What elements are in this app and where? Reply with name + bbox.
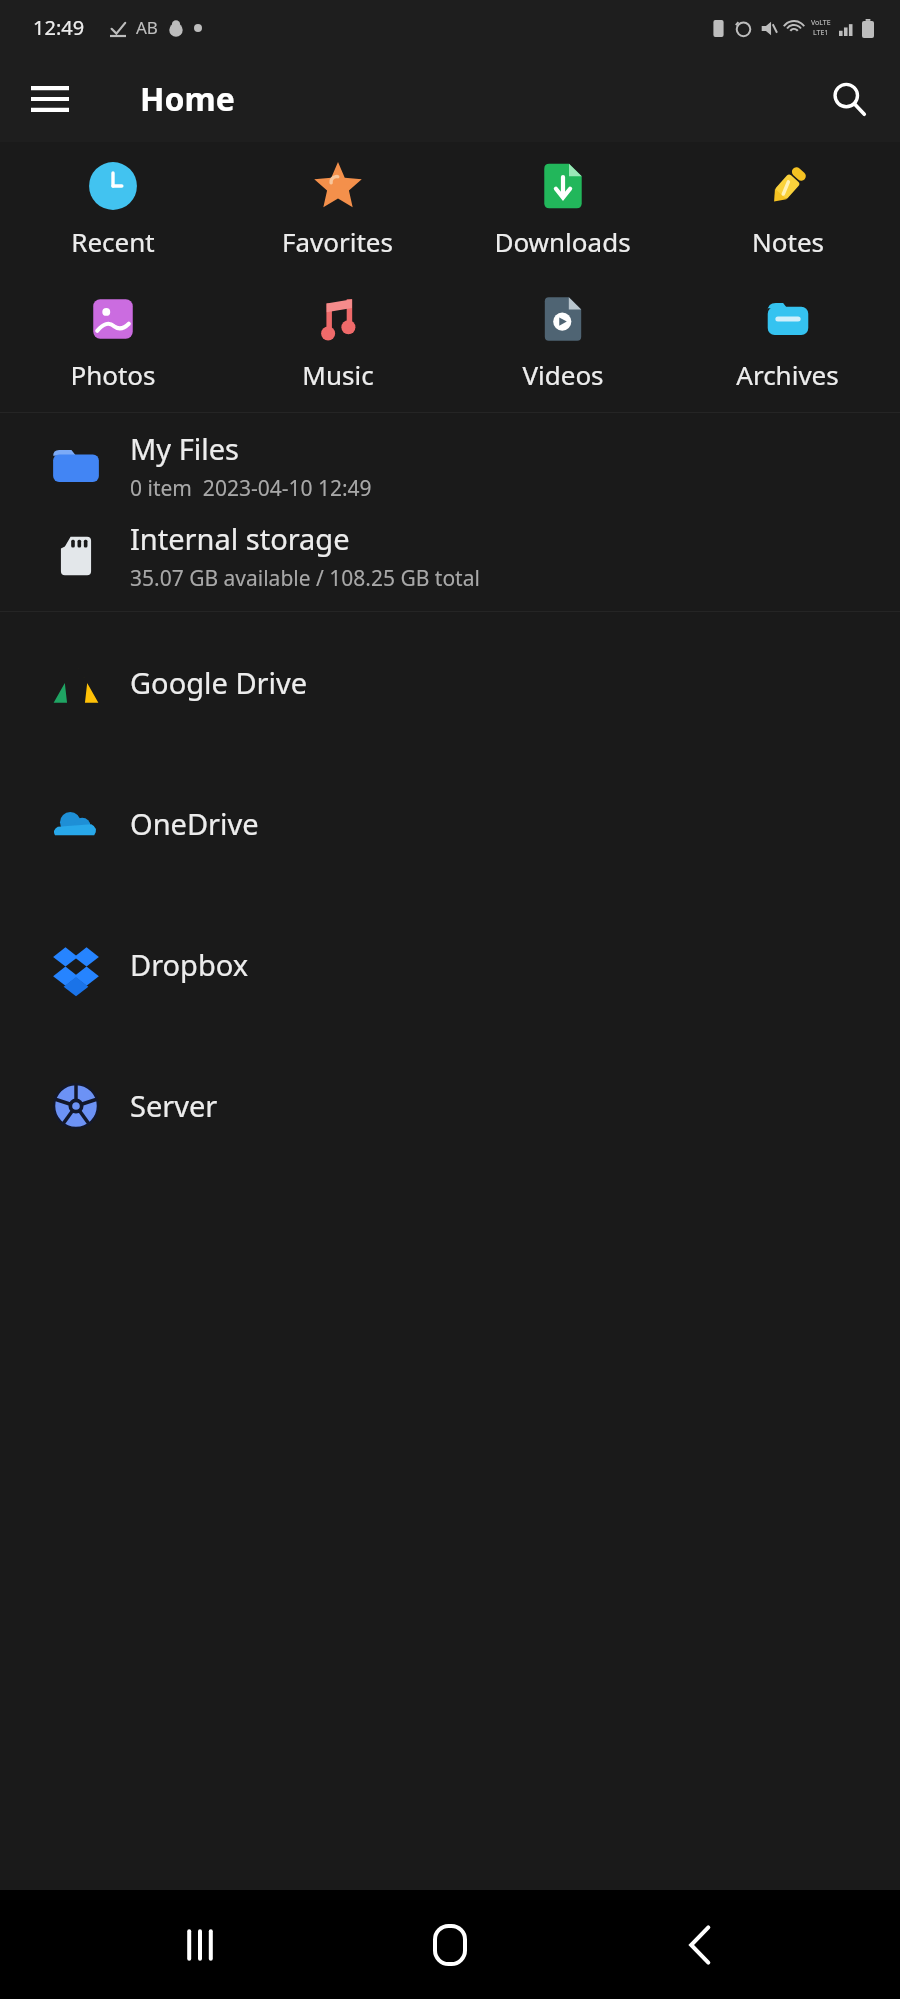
staticText: VoLTE (811, 18, 831, 28)
button[interactable]: Internal storage (0, 511, 900, 601)
button[interactable]: Search (818, 68, 880, 130)
staticText: Notes (752, 224, 824, 259)
button[interactable]: Music (225, 289, 450, 396)
staticText: Archives (736, 357, 839, 392)
staticText: 12:49 (33, 14, 85, 41)
staticText: Music (302, 357, 374, 392)
button[interactable]: Server (0, 1035, 900, 1176)
button[interactable]: Archives (675, 289, 900, 396)
button[interactable]: Videos (450, 289, 675, 396)
staticText: LTE1 (813, 28, 829, 38)
staticText: Server (130, 1086, 218, 1125)
staticText: Dropbox (130, 945, 249, 984)
staticText: Recent (71, 224, 155, 259)
button[interactable]: Dropbox (0, 894, 900, 1035)
staticText: 0 item 2023-04-10 12:49 (130, 474, 372, 503)
staticText: AB (136, 16, 158, 39)
button[interactable]: Favorites (225, 156, 450, 263)
staticText: Favorites (282, 224, 393, 259)
button[interactable]: Back (650, 1895, 750, 1995)
button[interactable]: Photos (0, 289, 225, 396)
staticText: Google Drive (130, 663, 308, 702)
button[interactable]: Downloads (450, 156, 675, 263)
button[interactable]: Menu (20, 69, 80, 129)
staticText: Internal storage (130, 519, 350, 558)
staticText: My Files (130, 429, 239, 468)
staticText: 35.07 GB available / 108.25 GB total (130, 564, 480, 593)
staticText: Home (140, 77, 235, 121)
staticText: OneDrive (130, 804, 259, 843)
button[interactable]: Home (400, 1895, 500, 1995)
button[interactable]: Recent (0, 156, 225, 263)
staticText: Downloads (494, 224, 631, 259)
button[interactable]: Google Drive (0, 612, 900, 753)
button[interactable]: Recents (150, 1895, 250, 1995)
staticText: Videos (522, 357, 604, 392)
button[interactable]: Notes (675, 156, 900, 263)
button[interactable]: OneDrive (0, 753, 900, 894)
staticText: Photos (70, 357, 156, 392)
button[interactable]: My Files (0, 421, 900, 511)
